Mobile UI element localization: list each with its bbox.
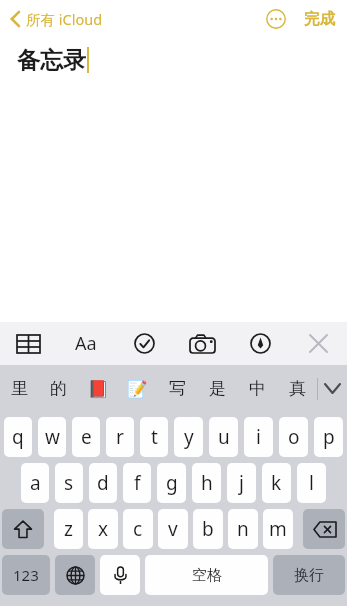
button[interactable]: 空格 [145, 555, 268, 595]
staticText: i [256, 424, 261, 450]
staticText: 123 [13, 565, 39, 585]
button[interactable]: i [244, 417, 273, 457]
button[interactable]: More options [262, 5, 290, 33]
staticText: s [64, 470, 74, 496]
staticText: 是 [209, 378, 226, 399]
button[interactable]: Hide suggestions [318, 365, 347, 412]
button[interactable]: Camera [173, 322, 231, 365]
button[interactable]: 是 [197, 365, 237, 412]
button[interactable]: a [21, 463, 49, 503]
staticText: 备忘录 [17, 46, 86, 75]
button[interactable]: 换行 [273, 555, 345, 595]
staticText: 📝 [126, 379, 148, 399]
button[interactable]: x [88, 509, 118, 549]
staticText: d [97, 470, 109, 496]
button[interactable]: 里 [0, 365, 39, 412]
button[interactable]: 所有 iCloud [6, 5, 107, 33]
button[interactable]: Shift [2, 509, 44, 549]
staticText: 真 [289, 378, 306, 399]
button[interactable]: u [209, 417, 238, 457]
button[interactable]: b [193, 509, 223, 549]
staticText: w [45, 424, 60, 450]
staticText: 中 [249, 378, 266, 399]
staticText: r [116, 424, 124, 450]
staticText: k [271, 470, 282, 496]
staticText: 里 [11, 378, 28, 399]
button[interactable]: 的 [39, 365, 78, 412]
button[interactable]: Text format [57, 322, 115, 365]
button[interactable]: f [123, 463, 151, 503]
staticText: 空格 [192, 566, 222, 585]
staticText: p [323, 424, 335, 450]
staticText: q [12, 424, 24, 450]
staticText: v [168, 516, 178, 542]
button[interactable]: Backspace [303, 509, 345, 549]
button[interactable]: Dictate [100, 555, 140, 595]
staticText: 所有 iCloud [26, 9, 103, 29]
button[interactable]: 📕 [78, 365, 117, 412]
button[interactable]: Close keyboard [289, 322, 347, 365]
button[interactable]: Table [0, 322, 57, 365]
staticText: y [184, 424, 194, 450]
staticText: o [288, 424, 300, 450]
staticText: b [202, 516, 214, 542]
button[interactable]: d [89, 463, 117, 503]
staticText: c [133, 516, 143, 542]
button[interactable]: c [123, 509, 153, 549]
staticText: a [30, 470, 41, 496]
staticText: f [134, 470, 141, 496]
button[interactable]: Change keyboard [55, 555, 95, 595]
button[interactable]: w [38, 417, 66, 457]
button[interactable]: n [228, 509, 258, 549]
button[interactable]: m [263, 509, 293, 549]
button[interactable]: k [262, 463, 291, 503]
staticText: 换行 [294, 566, 324, 585]
staticText: x [98, 516, 109, 542]
button[interactable]: e [72, 417, 100, 457]
staticText: g [166, 470, 178, 496]
button[interactable]: z [54, 509, 83, 549]
staticText: 📕 [87, 379, 109, 399]
button[interactable]: y [174, 417, 203, 457]
button[interactable]: 📝 [117, 365, 157, 412]
staticText: e [81, 424, 92, 450]
button[interactable]: s [55, 463, 83, 503]
button[interactable]: 写 [157, 365, 197, 412]
button[interactable]: v [158, 509, 188, 549]
button[interactable]: t [140, 417, 168, 457]
button[interactable]: Markup [231, 322, 289, 365]
staticText: n [237, 516, 249, 542]
button[interactable]: Checklist [115, 322, 173, 365]
staticText: Aa [75, 331, 97, 356]
staticText: l [309, 470, 314, 496]
staticText: j [239, 470, 244, 496]
button[interactable]: g [157, 463, 186, 503]
button[interactable]: r [106, 417, 134, 457]
button[interactable]: 中 [237, 365, 277, 412]
button[interactable]: 完成 [302, 5, 337, 33]
button[interactable]: j [227, 463, 256, 503]
staticText: t [151, 424, 158, 450]
button[interactable]: q [4, 417, 32, 457]
staticText: 的 [50, 378, 67, 399]
button[interactable]: o [279, 417, 308, 457]
button[interactable]: p [314, 417, 343, 457]
button[interactable]: 真 [277, 365, 317, 412]
button[interactable]: 123 [2, 555, 50, 595]
staticText: h [201, 470, 213, 496]
staticText: z [64, 516, 73, 542]
staticText: 完成 [304, 9, 335, 29]
staticText: u [218, 424, 230, 450]
button[interactable]: l [297, 463, 326, 503]
staticText: m [269, 516, 287, 542]
button[interactable]: h [192, 463, 221, 503]
staticText: 写 [169, 378, 186, 399]
